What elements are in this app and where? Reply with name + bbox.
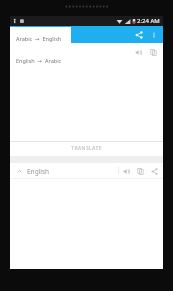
staticText: English [27, 167, 50, 176]
button[interactable]: Copy [133, 164, 147, 178]
staticText: 2:24 AM [137, 17, 160, 25]
staticText: English → Arabic [16, 57, 62, 64]
button[interactable]: Listen [131, 45, 146, 60]
button[interactable]: Share [147, 164, 161, 178]
button[interactable]: English → Arabic [10, 49, 71, 71]
button[interactable]: Arabic → English [10, 27, 71, 49]
button[interactable]: Share [131, 27, 147, 43]
button[interactable]: Collapse [14, 166, 24, 176]
staticText: Arabic → English [16, 35, 62, 42]
button[interactable]: Copy [146, 45, 161, 60]
button[interactable]: TRANSLATE [10, 141, 163, 156]
button[interactable]: Listen [119, 164, 133, 178]
button[interactable]: More options [147, 28, 161, 42]
staticText: TRANSLATE [71, 145, 102, 152]
